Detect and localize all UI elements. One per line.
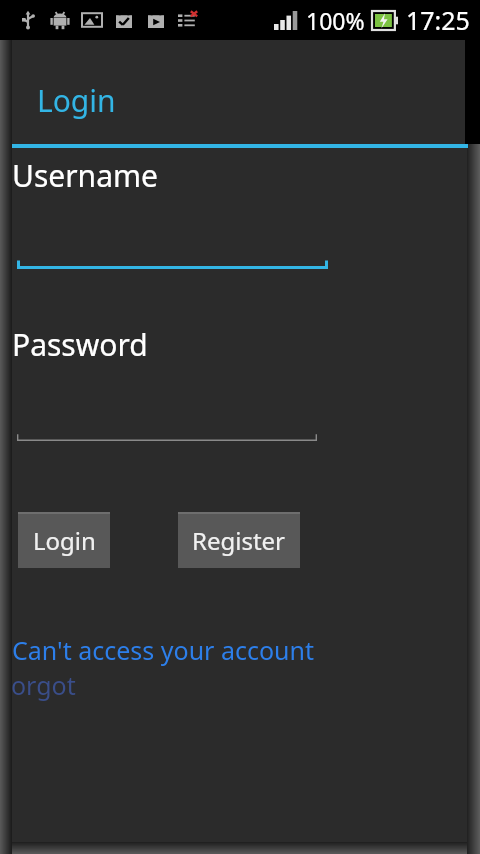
- button[interactable]: Login: [18, 512, 110, 568]
- button[interactable]: Text field: [17, 255, 328, 269]
- staticText: Login: [37, 80, 116, 121]
- staticText: Register: [192, 524, 286, 557]
- staticText: Password: [12, 324, 148, 365]
- staticText: Login: [33, 524, 96, 557]
- button[interactable]: Register: [178, 512, 300, 568]
- button[interactable]: Can't access your account: [12, 633, 314, 669]
- staticText: 100%: [306, 5, 365, 36]
- staticText: Forgot: [0, 668, 76, 702]
- staticText: Can't access your account: [12, 633, 314, 667]
- staticText: Username: [12, 155, 158, 196]
- staticText: 17:25: [406, 3, 470, 37]
- button[interactable]: Text field: [17, 427, 317, 441]
